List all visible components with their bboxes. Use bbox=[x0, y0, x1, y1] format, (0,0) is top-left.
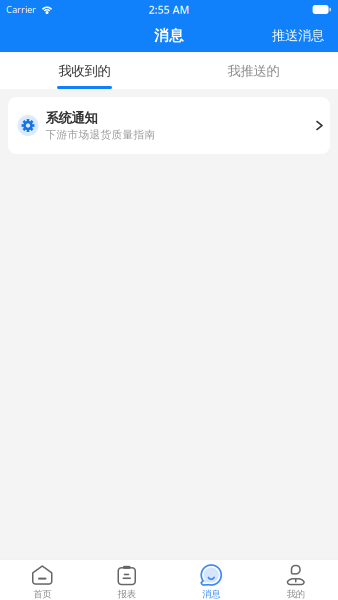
button[interactable]: 消息 bbox=[169, 559, 253, 600]
staticText: Carrier bbox=[6, 3, 36, 16]
button[interactable]: 系统通知 bbox=[8, 97, 330, 154]
staticText: 报表 bbox=[118, 588, 136, 600]
button[interactable]: 首页 bbox=[0, 559, 84, 600]
staticText: 下游市场退货质量指南 bbox=[45, 128, 155, 141]
staticText: 2:55 AM bbox=[148, 2, 189, 17]
staticText: 消息 bbox=[202, 588, 220, 600]
staticText: 推送消息 bbox=[272, 27, 324, 44]
staticText: 我的 bbox=[287, 588, 305, 600]
staticText: 系统通知 bbox=[45, 110, 97, 126]
button[interactable]: 报表 bbox=[84, 559, 169, 600]
staticText: 我收到的 bbox=[58, 63, 110, 79]
button[interactable]: 推送消息 bbox=[258, 19, 338, 52]
button[interactable]: 我收到的 bbox=[0, 52, 169, 89]
button[interactable]: 我推送的 bbox=[169, 52, 338, 89]
button[interactable]: 我的 bbox=[253, 559, 338, 600]
staticText: 消息 bbox=[154, 26, 184, 44]
staticText: 我推送的 bbox=[227, 63, 279, 79]
staticText: 首页 bbox=[33, 588, 51, 600]
